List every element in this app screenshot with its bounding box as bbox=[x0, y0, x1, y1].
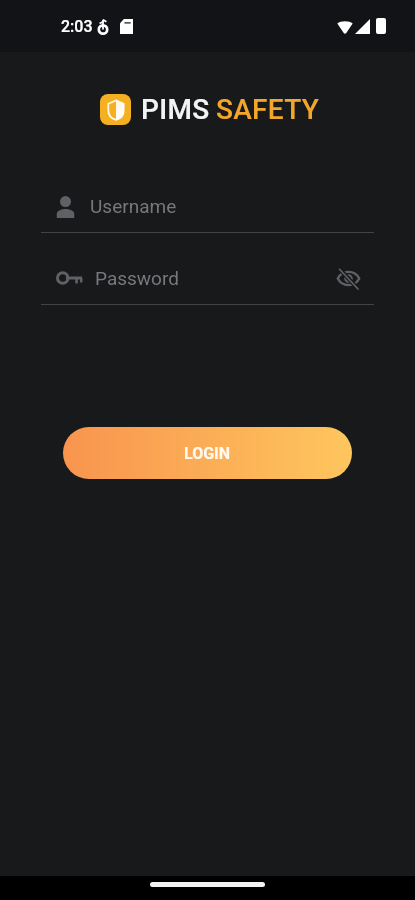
staticText: PIMS bbox=[141, 93, 210, 126]
staticText: SAFETY bbox=[216, 93, 320, 126]
button[interactable]: Toggle password visibility bbox=[336, 268, 361, 289]
staticText: Username bbox=[90, 195, 177, 217]
staticText: LOGIN bbox=[184, 444, 231, 463]
staticText: Password bbox=[95, 267, 179, 289]
button[interactable]: LOGIN bbox=[63, 427, 352, 479]
staticText: 2:03 bbox=[61, 17, 93, 36]
